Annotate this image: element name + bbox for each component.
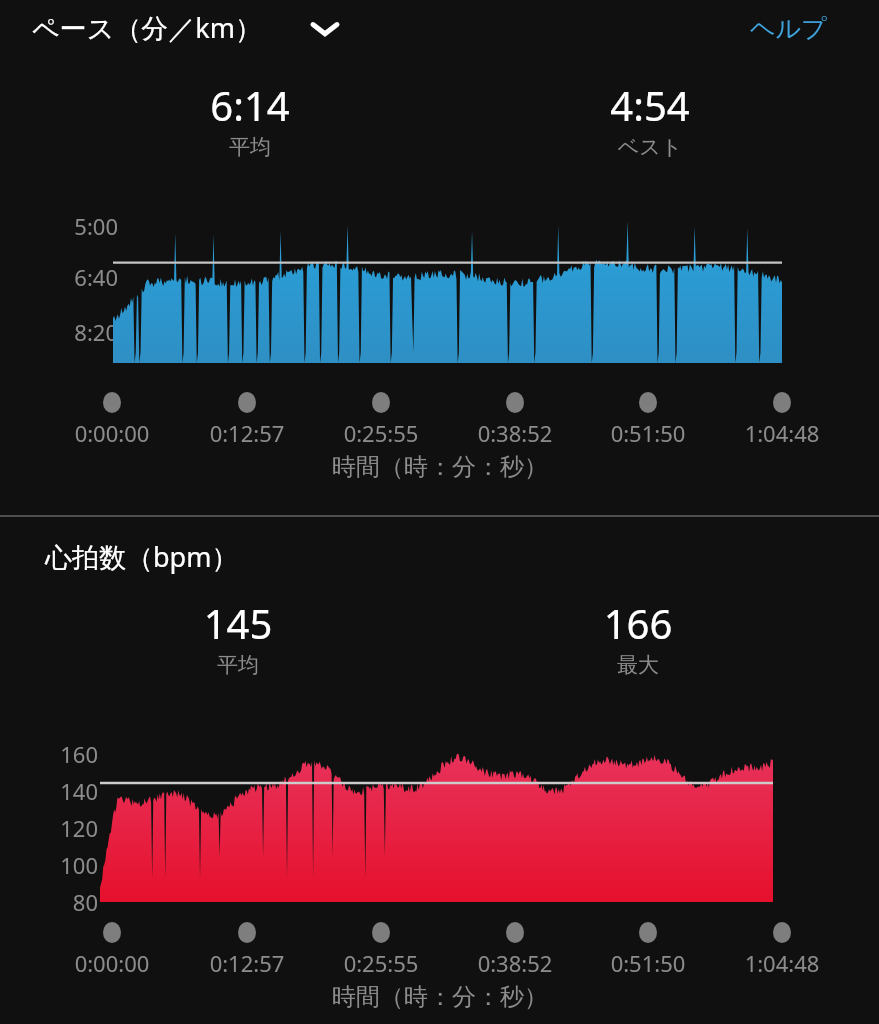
staticText: 平均 xyxy=(100,134,400,160)
staticText: 0:38:52 xyxy=(440,948,590,978)
staticText: 160 xyxy=(34,739,98,769)
staticText: 1:04:48 xyxy=(707,948,857,978)
staticText: 5:00 xyxy=(46,211,118,241)
staticText: 6:40 xyxy=(46,262,118,292)
staticText: 120 xyxy=(34,813,98,843)
staticText: 80 xyxy=(34,887,98,917)
staticText: 140 xyxy=(34,776,98,806)
staticText: 0:00:00 xyxy=(37,948,187,978)
button[interactable]: ヘルプ xyxy=(750,6,865,50)
staticText: 0:51:50 xyxy=(573,418,723,448)
staticText: 0:25:55 xyxy=(306,948,456,978)
staticText: 0:12:57 xyxy=(172,948,322,978)
staticText: 0:25:55 xyxy=(306,418,456,448)
staticText: 166 xyxy=(488,596,788,650)
staticText: 最大 xyxy=(488,652,788,678)
staticText: 100 xyxy=(34,850,98,880)
staticText: 時間（時：分：秒） xyxy=(240,982,640,1012)
staticText: 0:00:00 xyxy=(37,418,187,448)
staticText: 時間（時：分：秒） xyxy=(240,452,640,482)
staticText: ヘルプ xyxy=(750,13,827,44)
staticText: 145 xyxy=(88,596,388,650)
staticText: 4:54 xyxy=(500,78,800,132)
staticText: 平均 xyxy=(88,652,388,678)
staticText: ペース（分／km） xyxy=(32,9,262,46)
staticText: 8:20 xyxy=(46,317,118,347)
staticText: 6:14 xyxy=(100,78,400,132)
staticText: 0:12:57 xyxy=(172,418,322,448)
staticText: 1:04:48 xyxy=(707,418,857,448)
button[interactable]: ペース（分／km） xyxy=(32,4,362,50)
staticText: ベスト xyxy=(500,134,800,160)
staticText: 0:38:52 xyxy=(440,418,590,448)
staticText: 0:51:50 xyxy=(573,948,723,978)
staticText: 心拍数（bpm） xyxy=(45,538,445,575)
